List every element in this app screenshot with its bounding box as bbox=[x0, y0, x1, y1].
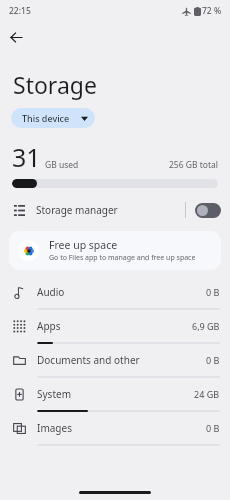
button[interactable]: This device bbox=[11, 108, 95, 128]
staticText: 72 % bbox=[202, 5, 222, 17]
button[interactable]: Free up space bbox=[9, 231, 221, 270]
staticText: Storage bbox=[13, 69, 97, 100]
staticText: System bbox=[37, 387, 71, 401]
staticText: 31 bbox=[12, 140, 41, 174]
staticText: 24 GB bbox=[194, 388, 220, 400]
staticText: Documents and other bbox=[37, 353, 140, 367]
button[interactable]: Apps bbox=[0, 310, 230, 344]
staticText: Images bbox=[37, 421, 72, 435]
staticText: 0 B bbox=[206, 354, 220, 366]
staticText: Apps bbox=[37, 319, 61, 333]
button[interactable]: System bbox=[0, 378, 230, 412]
staticText: This device bbox=[22, 112, 70, 124]
staticText: Storage manager bbox=[36, 203, 118, 217]
staticText: 6,9 GB bbox=[192, 320, 220, 332]
button[interactable]: Back bbox=[5, 26, 27, 48]
staticText: 22:15 bbox=[9, 5, 31, 17]
staticText: Free up space bbox=[49, 238, 118, 252]
staticText: 0 B bbox=[206, 422, 220, 434]
staticText: Go to Files app to manage and free up sp… bbox=[49, 253, 196, 263]
staticText: GB used bbox=[45, 159, 79, 171]
button[interactable]: Audio bbox=[0, 276, 230, 310]
button[interactable]: Storage manager bbox=[0, 195, 230, 225]
button[interactable]: Documents and other bbox=[0, 344, 230, 378]
button[interactable]: Images bbox=[0, 412, 230, 446]
staticText: 256 GB total bbox=[169, 159, 218, 171]
staticText: 0 B bbox=[206, 286, 220, 298]
staticText: Audio bbox=[37, 285, 65, 299]
